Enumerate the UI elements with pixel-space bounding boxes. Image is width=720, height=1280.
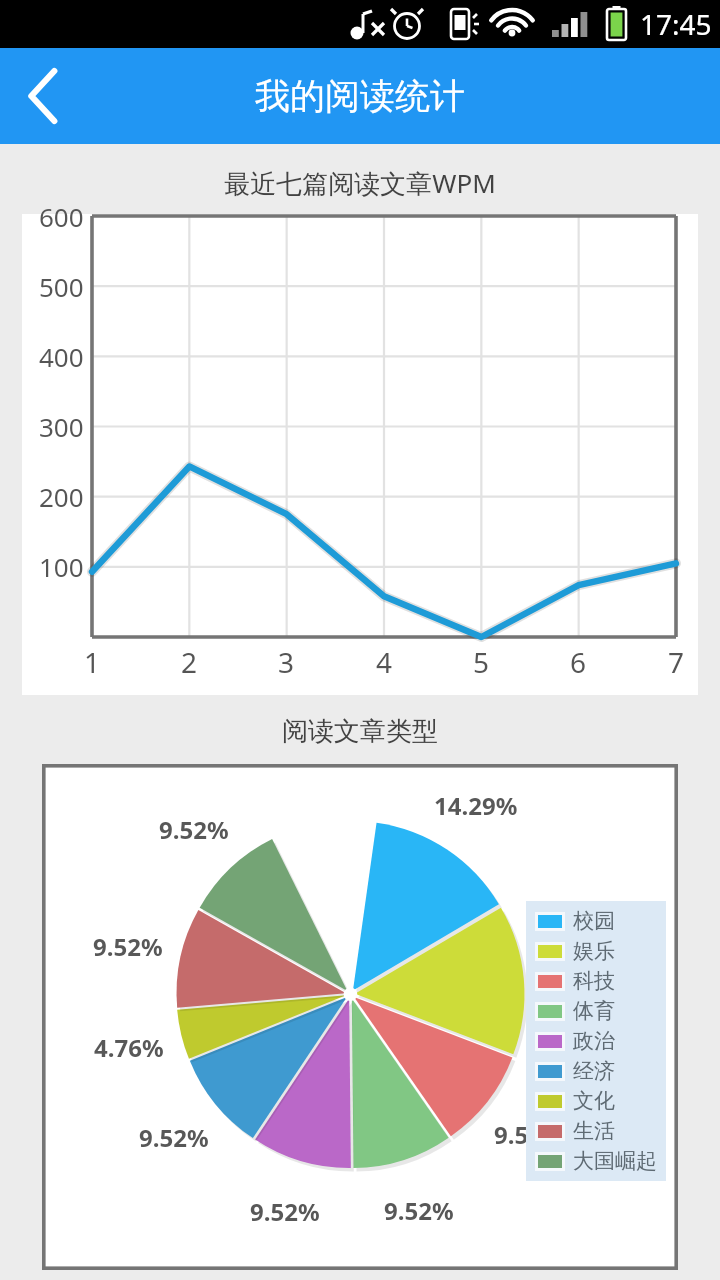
staticText: 2 xyxy=(181,643,198,681)
staticText: 大国崛起 xyxy=(573,1148,657,1174)
staticText: 9.52% xyxy=(384,1194,454,1227)
staticText: 400 xyxy=(39,339,84,374)
staticText: 7 xyxy=(668,643,685,681)
staticText: 17:45 xyxy=(640,5,712,43)
button[interactable]: Back xyxy=(0,50,92,142)
staticText: 经济 xyxy=(573,1058,615,1084)
staticText: 9.52% xyxy=(139,1121,209,1154)
staticText: 9.52% xyxy=(93,930,163,963)
staticText: 4 xyxy=(376,643,393,681)
staticText: 9.52% xyxy=(159,813,229,846)
staticText: 6 xyxy=(570,643,587,681)
staticText: 校园 xyxy=(573,908,615,934)
staticText: 文化 xyxy=(573,1088,615,1114)
staticText: 生活 xyxy=(573,1118,615,1144)
staticText: 600 xyxy=(39,199,84,234)
staticText: 我的阅读统计 xyxy=(255,74,465,118)
staticText: 5 xyxy=(473,643,490,681)
staticText: 9.52% xyxy=(494,1118,564,1151)
staticText: 科技 xyxy=(573,968,615,994)
staticText: 3 xyxy=(278,643,295,681)
staticText: 300 xyxy=(39,409,84,444)
staticText: 最近七篇阅读文章WPM xyxy=(0,165,720,201)
staticText: 体育 xyxy=(573,998,615,1024)
staticText: 100 xyxy=(39,549,84,584)
button[interactable]: 600 xyxy=(22,214,698,695)
staticText: 阅读文章类型 xyxy=(0,715,720,748)
staticText: 14.29% xyxy=(534,959,618,992)
staticText: 200 xyxy=(39,479,84,514)
staticText: 娱乐 xyxy=(573,938,615,964)
button[interactable]: 14.29% xyxy=(42,764,678,1270)
staticText: 9.52% xyxy=(250,1195,320,1228)
staticText: 政治 xyxy=(573,1028,615,1054)
staticText: 14.29% xyxy=(434,789,518,822)
staticText: 1 xyxy=(84,643,101,681)
staticText: 500 xyxy=(39,269,84,304)
staticText: 4.76% xyxy=(94,1031,164,1064)
